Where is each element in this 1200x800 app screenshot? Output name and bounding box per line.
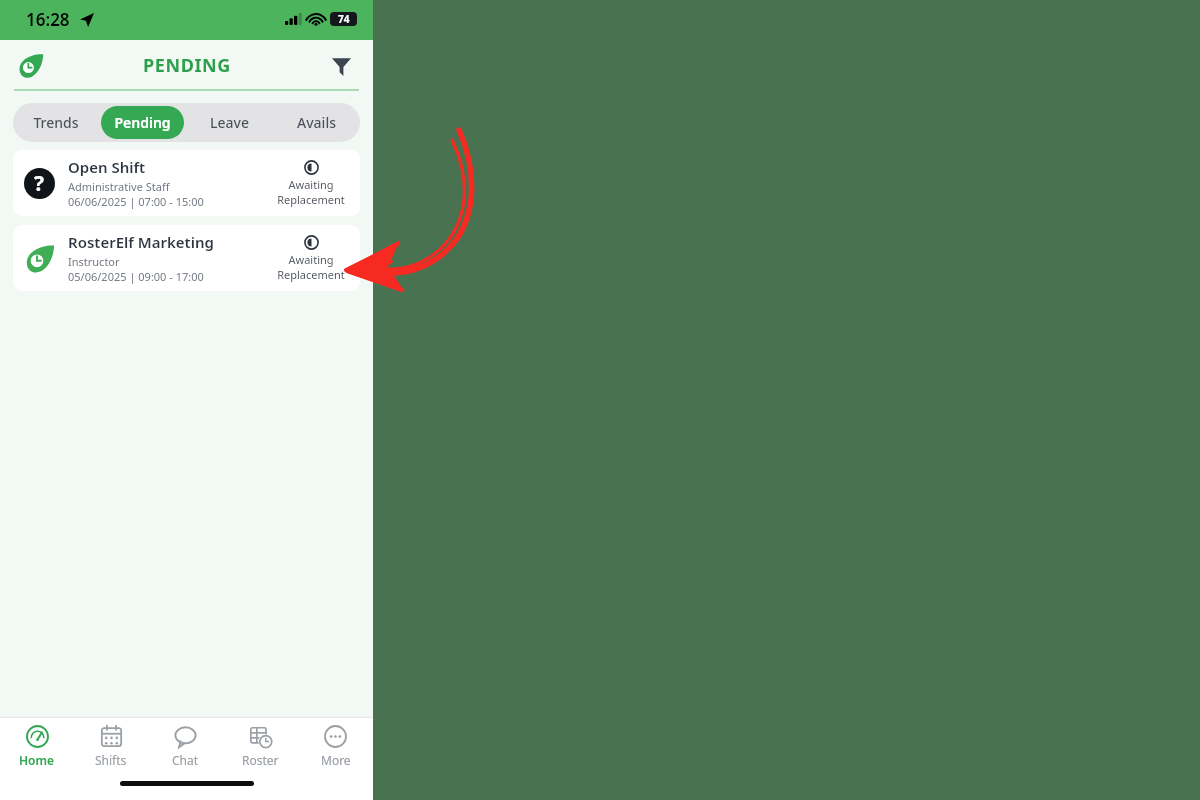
staticText: Home: [19, 752, 55, 768]
staticText: PENDING: [143, 53, 231, 78]
staticText: Avails: [297, 113, 336, 132]
staticText: Leave: [210, 113, 249, 132]
button[interactable]: Leave: [188, 106, 271, 139]
staticText: 74: [338, 12, 350, 26]
button[interactable]: Shifts: [74, 718, 148, 774]
button[interactable]: Roster: [223, 718, 298, 774]
staticText: Instructor: [68, 254, 120, 269]
button[interactable]: Chat: [148, 718, 223, 774]
staticText: Replacement: [277, 267, 345, 282]
staticText: Administrative Staff: [68, 179, 170, 194]
button[interactable]: Pending: [101, 106, 184, 139]
staticText: 16:28: [26, 8, 70, 31]
staticText: More: [321, 752, 351, 768]
button[interactable]: Avails: [275, 106, 358, 139]
staticText: Open Shift: [68, 157, 146, 177]
button[interactable]: Trends: [15, 106, 97, 139]
staticText: Trends: [33, 113, 79, 132]
staticText: 06/06/2025 | 07:00 - 15:00: [68, 194, 204, 209]
button[interactable]: More: [298, 718, 373, 774]
staticText: Awaiting: [288, 177, 334, 192]
button[interactable]: ?: [13, 150, 360, 216]
staticText: ?: [34, 169, 45, 198]
staticText: Roster: [242, 752, 279, 768]
staticText: RosterElf Marketing: [68, 232, 214, 252]
button[interactable]: RosterElf logo: [14, 49, 48, 83]
button[interactable]: Home: [0, 718, 74, 774]
button[interactable]: RosterElf Marketing: [13, 225, 360, 291]
staticText: Replacement: [277, 192, 345, 207]
staticText: Chat: [172, 752, 199, 768]
staticText: Shifts: [95, 752, 127, 768]
staticText: 05/06/2025 | 09:00 - 17:00: [68, 269, 204, 284]
staticText: Awaiting: [288, 252, 334, 267]
button[interactable]: Filter: [321, 46, 361, 86]
staticText: Pending: [114, 113, 171, 132]
